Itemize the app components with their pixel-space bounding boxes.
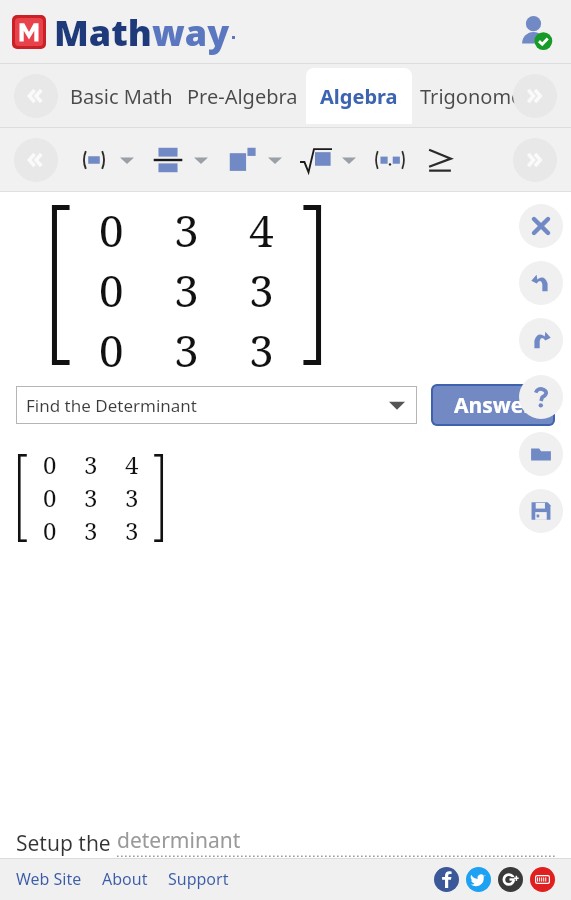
button[interactable]: Undo: [519, 261, 563, 305]
button[interactable]: Google Plus: [498, 867, 523, 892]
staticText: Support: [168, 868, 229, 890]
button[interactable]: Algebra: [320, 68, 398, 124]
staticText: Math: [54, 8, 152, 57]
staticText: way: [152, 8, 230, 57]
button[interactable]: Web Site: [16, 862, 82, 896]
button[interactable]: Point: [370, 138, 410, 182]
staticText: Pre-Algebra: [187, 83, 298, 110]
button[interactable]: More options: [336, 138, 362, 182]
button[interactable]: Answer: [431, 384, 555, 426]
staticText: 4: [249, 200, 274, 260]
button[interactable]: Support: [168, 862, 229, 896]
staticText: Web Site: [16, 868, 82, 890]
staticText: 3: [84, 514, 98, 547]
staticText: determinant: [117, 826, 241, 855]
button[interactable]: Exponent: [222, 138, 262, 182]
staticText: 0: [99, 260, 124, 320]
button[interactable]: Redo: [519, 318, 563, 362]
staticText: 3: [174, 200, 199, 260]
button[interactable]: Scroll left: [14, 138, 58, 182]
staticText: 3: [249, 320, 274, 370]
button[interactable]: Pre-Algebra: [187, 73, 298, 120]
button[interactable]: Fraction: [148, 138, 188, 182]
button[interactable]: Facebook: [434, 867, 459, 892]
staticText: Basic Math: [70, 83, 173, 110]
button[interactable]: About: [102, 862, 148, 896]
staticText: About: [102, 868, 148, 890]
button[interactable]: Square root: [296, 138, 336, 182]
button[interactable]: More options: [262, 138, 288, 182]
button[interactable]: Parentheses: [74, 138, 114, 182]
staticText: 4: [125, 448, 139, 481]
button[interactable]: More options: [188, 138, 214, 182]
button[interactable]: Save: [519, 489, 563, 533]
staticText: 3: [174, 260, 199, 320]
staticText: 3: [84, 481, 98, 514]
staticText: Answer: [454, 391, 533, 420]
staticText: Trigonomet: [420, 83, 530, 110]
button[interactable]: Twitter: [466, 867, 491, 892]
button[interactable]: Trigonomet: [420, 73, 530, 120]
staticText: 0: [99, 320, 124, 370]
button[interactable]: Find the Determinant: [16, 386, 417, 424]
staticText: 3: [249, 260, 274, 320]
staticText: 0: [43, 514, 57, 547]
button[interactable]: Account: [513, 10, 557, 54]
staticText: Algebra: [320, 83, 398, 110]
button[interactable]: Help: [519, 375, 563, 419]
button[interactable]: Scroll right: [513, 74, 557, 118]
staticText: Find the Determinant: [26, 394, 197, 417]
staticText: 3: [84, 448, 98, 481]
staticText: 0: [43, 448, 57, 481]
button[interactable]: More options: [114, 138, 140, 182]
button[interactable]: determinant: [117, 826, 555, 858]
button[interactable]: Scroll right: [513, 138, 557, 182]
button[interactable]: YouTube: [530, 867, 555, 892]
button[interactable]: Close: [519, 204, 563, 248]
staticText: 3: [174, 320, 199, 370]
button[interactable]: Open: [519, 432, 563, 476]
button[interactable]: Scroll left: [14, 74, 58, 118]
button[interactable]: Greater or equal: [420, 138, 460, 182]
staticText: 3: [125, 481, 139, 514]
staticText: 0: [43, 481, 57, 514]
staticText: 3: [125, 514, 139, 547]
button[interactable]: Basic Math: [70, 73, 173, 120]
staticText: 0: [99, 200, 124, 260]
staticText: Setup the: [16, 829, 117, 858]
